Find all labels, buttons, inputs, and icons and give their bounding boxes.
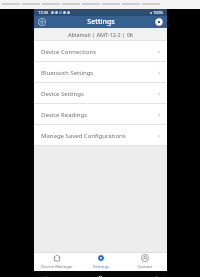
button[interactable]: Device Settings: [34, 83, 167, 104]
button[interactable]: Contact: [123, 252, 167, 271]
button[interactable]: Manage Saved Configurations: [34, 125, 167, 146]
staticText: Ablemail | AMT-12-2 | 06: [68, 31, 133, 38]
staticText: Device Connections: [41, 48, 97, 56]
button[interactable]: Device Manager: [34, 252, 79, 271]
button[interactable]: Settings: [79, 252, 123, 271]
button[interactable]: Device Readings: [34, 104, 167, 125]
button[interactable]: Menu: [37, 17, 47, 27]
button[interactable]: Back: [150, 273, 161, 277]
button[interactable]: Device Connections: [34, 41, 167, 62]
button[interactable]: Bluetooth Settings: [34, 62, 167, 83]
staticText: Settings: [87, 17, 115, 27]
staticText: Device Readings: [41, 111, 88, 119]
staticText: Settings: [93, 264, 109, 270]
button[interactable]: Home: [95, 273, 106, 277]
button[interactable]: Recents: [40, 273, 51, 277]
button[interactable]: Ablemail | AMT-12-2 | 06: [34, 28, 167, 41]
staticText: Device Settings: [41, 90, 84, 98]
staticText: Manage Saved Configurations: [41, 132, 126, 140]
staticText: Contact: [137, 264, 153, 270]
button[interactable]: Help: [154, 17, 164, 27]
staticText: Device Manager: [41, 264, 73, 270]
staticText: 100%: [153, 10, 164, 15]
staticText: Bluetooth Settings: [41, 69, 94, 77]
staticText: 17:35: [38, 10, 49, 15]
